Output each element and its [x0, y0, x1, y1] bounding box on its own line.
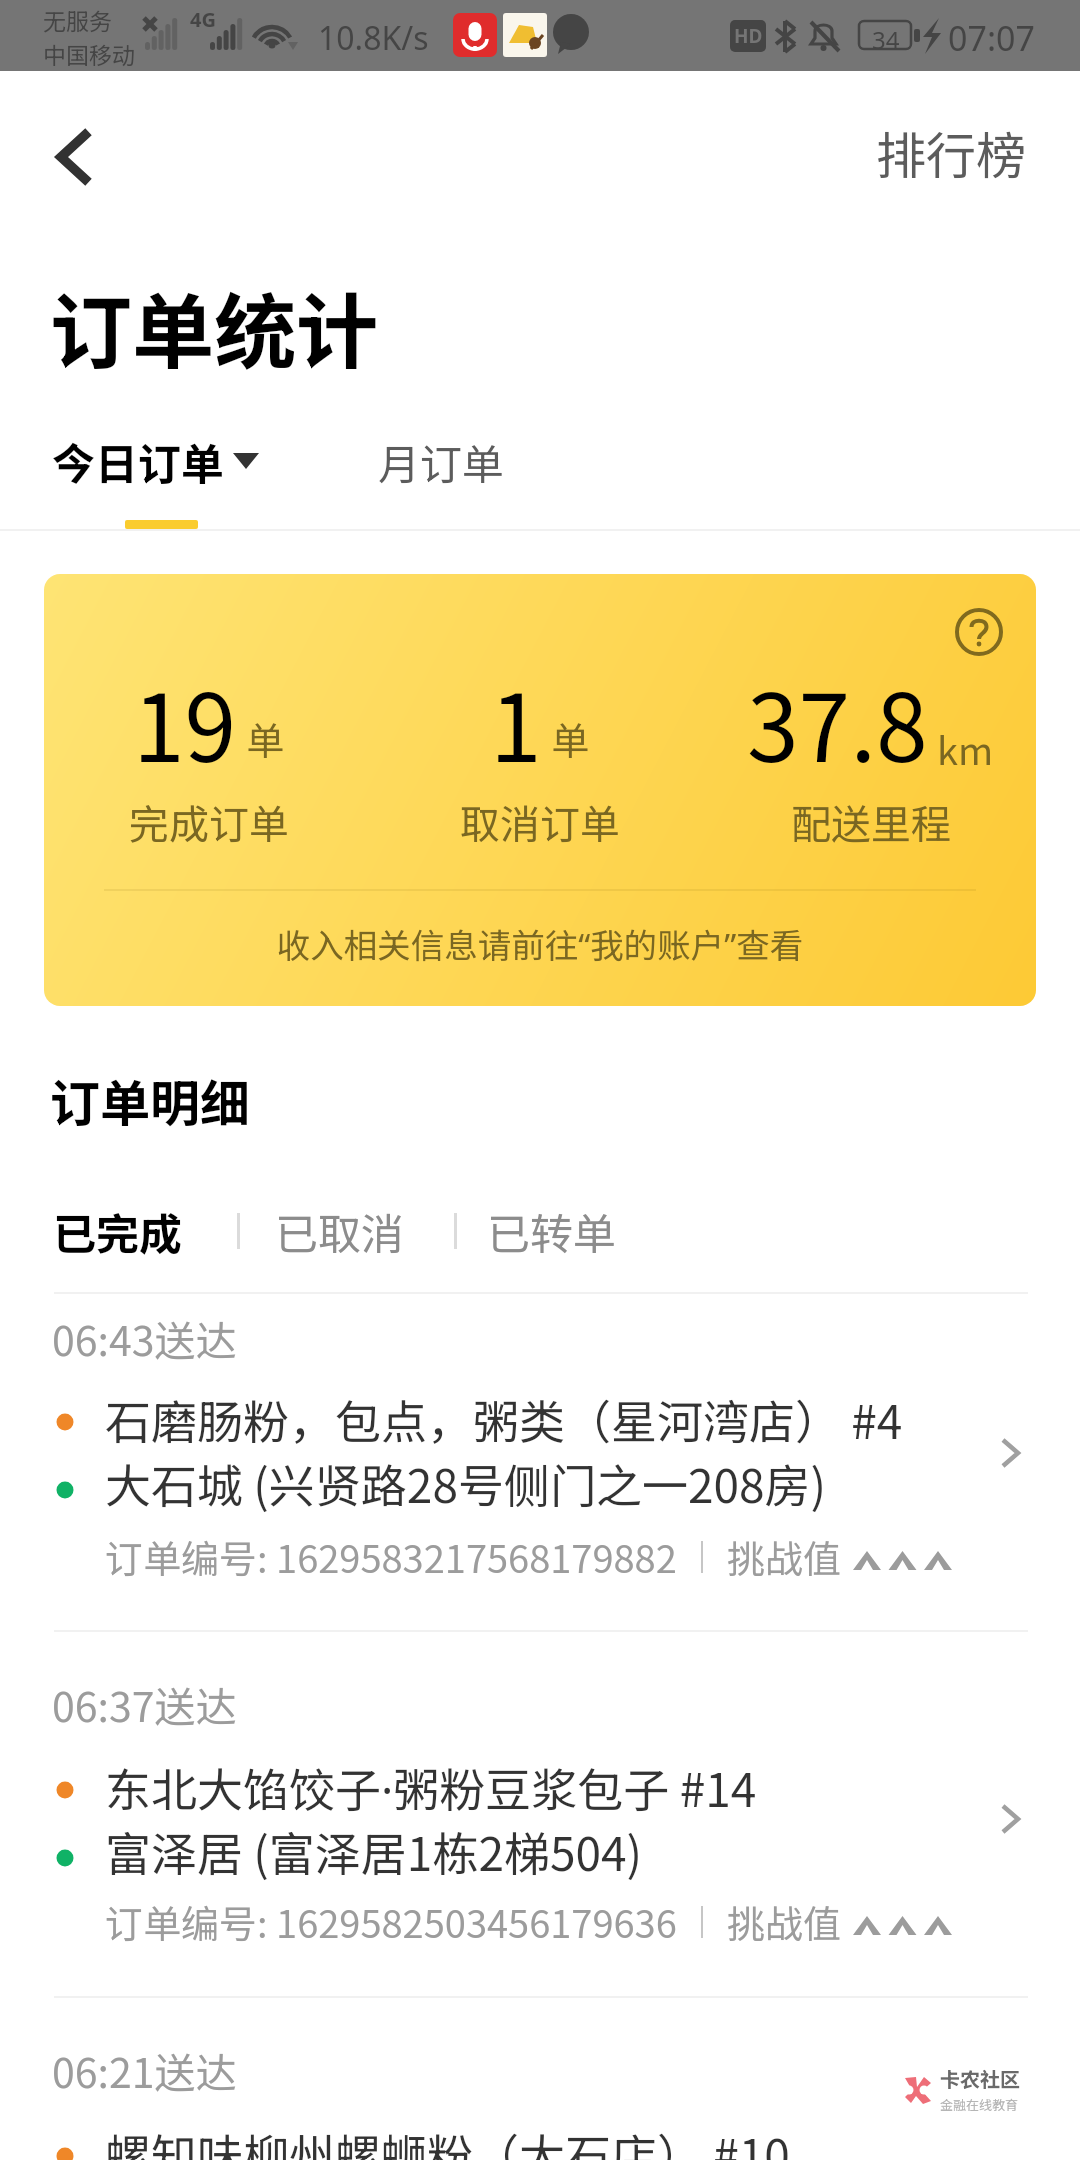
button[interactable]: 已转单: [481, 1194, 622, 1268]
staticText: 挑战值: [727, 1894, 842, 1949]
staticText: 已取消: [275, 1200, 404, 1262]
staticText: 单: [551, 711, 590, 766]
staticText: 订单统计: [50, 267, 379, 386]
staticText: 订单编号: 1629583217568179882: [105, 1529, 677, 1584]
staticText: 今日订单: [52, 430, 224, 492]
staticText: 19: [133, 654, 237, 789]
staticText: 已转单: [487, 1200, 616, 1262]
button[interactable]: Help: [951, 604, 1007, 660]
button[interactable]: 已完成: [47, 1194, 188, 1268]
button[interactable]: 排行榜: [868, 108, 1034, 196]
staticText: 06:37送达: [52, 1674, 237, 1733]
staticText: 06:21送达: [52, 2040, 237, 2099]
staticText: 已完成: [53, 1200, 182, 1262]
staticText: 配送里程: [791, 793, 951, 851]
button[interactable]: 已取消: [269, 1194, 410, 1268]
staticText: 订单明细: [50, 1064, 250, 1136]
staticText: 卡农社区: [940, 2064, 1020, 2093]
staticText: 单: [246, 711, 285, 766]
staticText: 订单编号: 1629582503456179636: [105, 1894, 677, 1949]
staticText: 月订单: [378, 431, 505, 492]
staticText: 1: [490, 654, 542, 789]
button[interactable]: 月订单: [370, 425, 513, 498]
staticText: km: [937, 721, 994, 776]
staticText: 富泽居 (富泽居1栋2梯504): [105, 1818, 643, 1885]
button[interactable]: [0, 1632, 1080, 1968]
staticText: 石磨肠粉，包点，粥类（星河湾店） #4: [105, 1386, 903, 1453]
staticText: 中国移动: [43, 37, 135, 70]
staticText: HD: [734, 23, 763, 49]
staticText: 06:43送达: [52, 1308, 237, 1367]
staticText: 34: [872, 23, 900, 56]
staticText: 东北大馅饺子·粥粉豆浆包子 #14: [105, 1754, 757, 1821]
staticText: 07:07: [948, 15, 1035, 61]
button[interactable]: Back: [20, 118, 100, 198]
staticText: 4G: [190, 6, 216, 33]
staticText: 大石城 (兴贤路28号侧门之一208房): [105, 1450, 827, 1517]
staticText: 10.8K/s: [318, 16, 429, 60]
staticText: 收入相关信息请前往“我的账户”查看: [44, 919, 1036, 968]
staticText: 完成订单: [129, 793, 289, 851]
staticText: 金融在线教育: [940, 2095, 1019, 2114]
staticText: 无服务: [43, 3, 112, 36]
button[interactable]: [0, 1294, 1080, 1630]
staticText: 取消订单: [460, 793, 620, 851]
staticText: 37.8: [747, 654, 928, 789]
staticText: 螺知味柳州螺蛳粉（大石店） #10: [105, 2120, 790, 2160]
button[interactable]: 今日订单: [44, 424, 267, 498]
staticText: 排行榜: [876, 116, 1026, 188]
button[interactable]: [0, 1998, 1080, 2160]
staticText: 挑战值: [727, 1529, 842, 1584]
